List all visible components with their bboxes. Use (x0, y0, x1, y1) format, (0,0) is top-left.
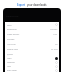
staticText: Download (7, 28, 17, 31)
button[interactable]: Quality (5, 52, 59, 56)
staticText: Storage (7, 38, 15, 41)
staticText: your downloads (27, 3, 47, 6)
staticText: Auto (53, 33, 58, 36)
button[interactable]: High (5, 56, 59, 60)
button[interactable]: Use Wi-Fi (5, 42, 59, 47)
button[interactable]: Delete after (5, 47, 59, 52)
staticText: High (7, 57, 12, 60)
staticText: Medium (7, 61, 15, 64)
staticText: On (55, 43, 58, 46)
button[interactable]: Low (5, 64, 59, 68)
staticText: Export (17, 3, 26, 6)
button[interactable]: Video quality (5, 32, 59, 37)
staticText: Downloads (6, 14, 19, 17)
button[interactable]: Storage (5, 37, 59, 42)
button[interactable]: Download (5, 27, 59, 32)
button[interactable]: Data saver (5, 68, 59, 72)
staticText: Use Wi-Fi (7, 43, 16, 46)
staticText: Manage (50, 28, 58, 31)
staticText: 30 days (51, 48, 58, 51)
staticText: Quality (7, 53, 14, 55)
staticText: Delete after (7, 48, 19, 51)
staticText: Low (7, 65, 11, 68)
staticText: Data saver (7, 69, 17, 72)
staticText: Menu (7, 24, 12, 26)
button[interactable]: Medium (5, 60, 59, 64)
staticText: Video quality (7, 33, 20, 36)
button[interactable]: Menu (5, 22, 59, 27)
